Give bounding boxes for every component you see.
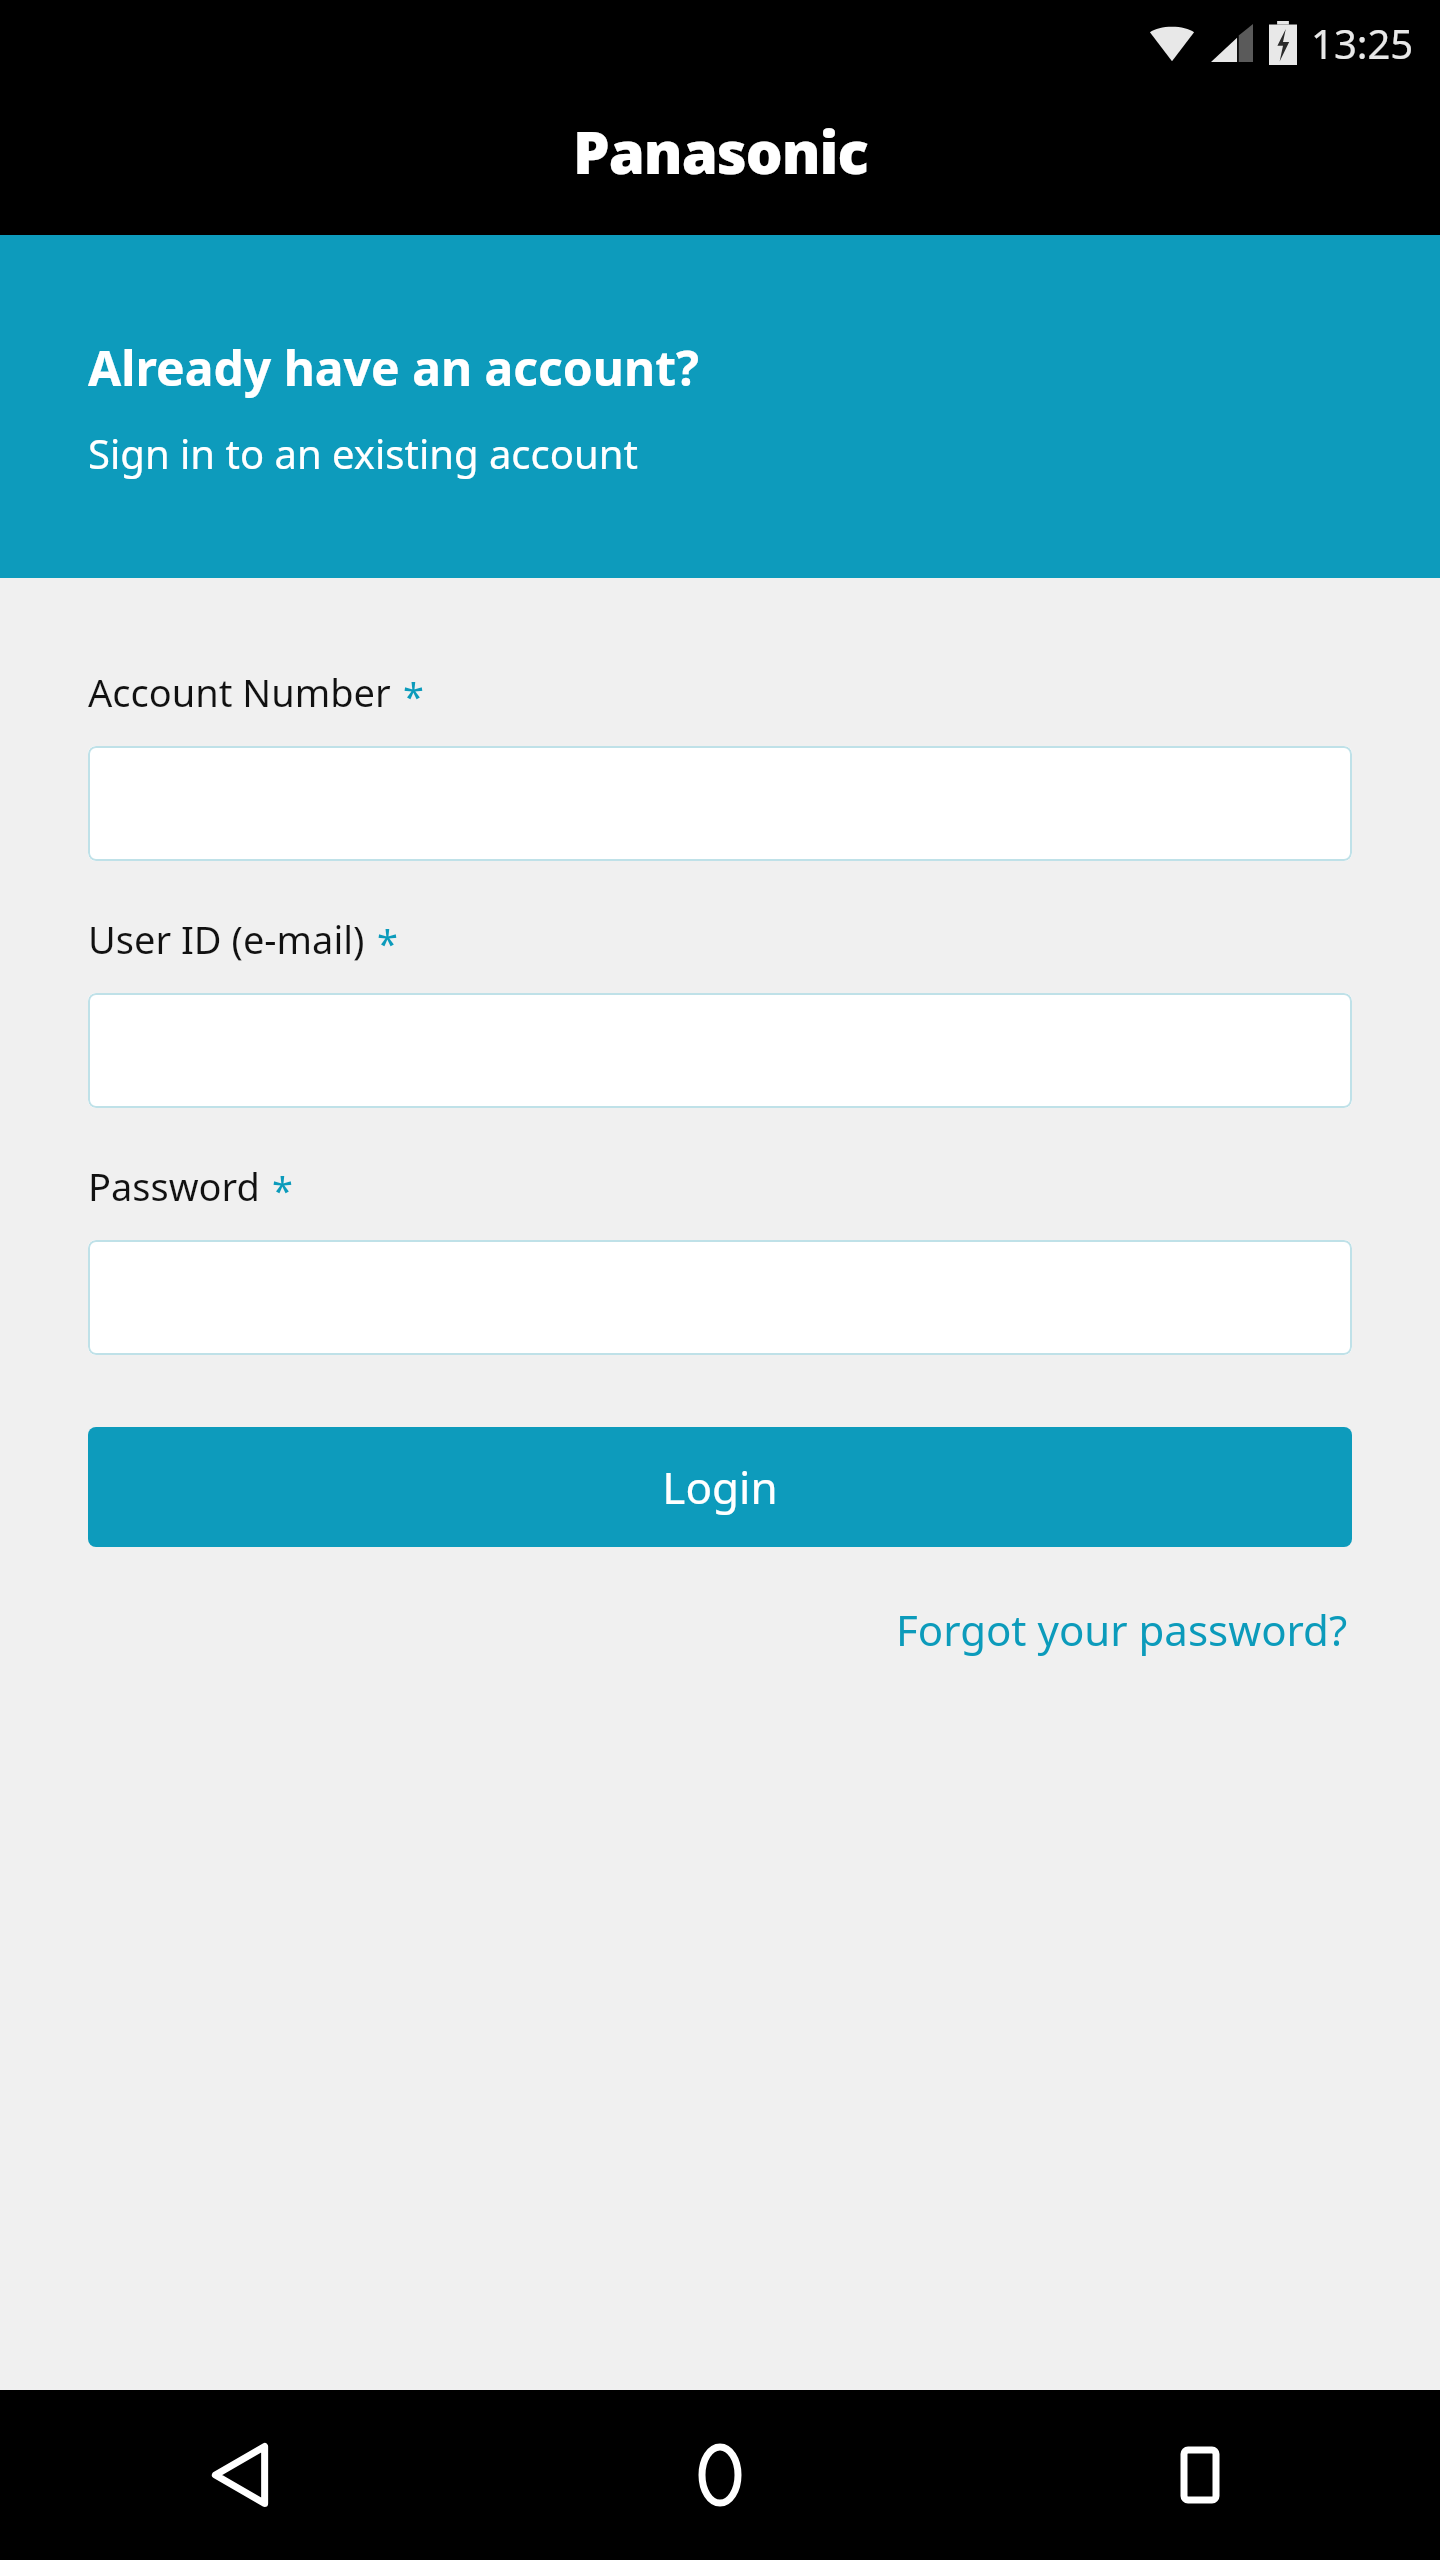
staticText: User ID (e-mail) — [88, 913, 365, 965]
button[interactable]: Text input field — [88, 993, 1352, 1108]
button[interactable]: Text input field — [88, 1240, 1352, 1355]
staticText: Account Number — [88, 666, 391, 718]
button[interactable]: Forgot your password? — [892, 1595, 1352, 1664]
button[interactable]: Recent apps — [960, 2390, 1440, 2560]
staticText: 13:25 — [1311, 16, 1414, 70]
button[interactable]: Back — [0, 2390, 480, 2560]
staticText: * — [272, 1164, 293, 1216]
staticText: Password — [88, 1160, 260, 1212]
staticText: * — [403, 670, 424, 722]
staticText: * — [377, 917, 398, 969]
button[interactable]: Home — [480, 2390, 960, 2560]
staticText: Panasonic — [573, 112, 868, 191]
button[interactable]: Text input field — [88, 746, 1352, 861]
staticText: Forgot your password? — [896, 1601, 1348, 1658]
staticText: Login — [662, 1457, 778, 1517]
staticText: Sign in to an existing account — [88, 426, 638, 480]
staticText: Already have an account? — [88, 335, 699, 400]
button[interactable]: Login — [88, 1427, 1352, 1547]
